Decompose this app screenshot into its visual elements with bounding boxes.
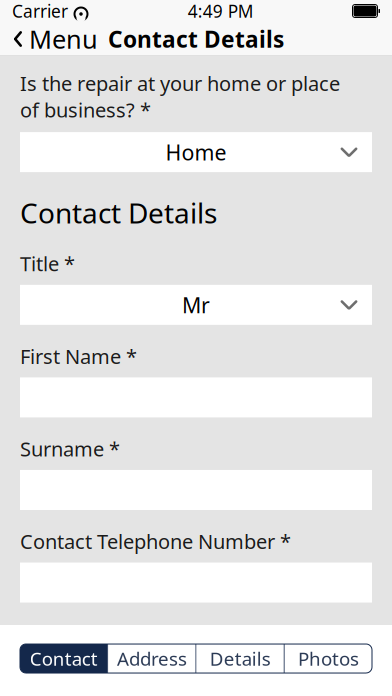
button[interactable]: Text field bbox=[20, 655, 372, 695]
staticText: Contact Telephone Number * bbox=[20, 528, 291, 555]
button[interactable]: Mr bbox=[20, 285, 372, 325]
staticText: Photos bbox=[298, 646, 359, 671]
staticText: First Name * bbox=[20, 343, 137, 369]
button[interactable]: Home bbox=[20, 132, 372, 172]
staticText: Email Address * bbox=[20, 620, 168, 647]
staticText: 4:49 PM bbox=[188, 0, 254, 22]
staticText: Address bbox=[117, 646, 187, 671]
staticText: Is the repair at your home or place of b… bbox=[20, 70, 340, 123]
staticText: Carrier bbox=[12, 0, 68, 22]
button[interactable]: Menu bbox=[0, 16, 98, 62]
button[interactable]: Details bbox=[196, 644, 284, 673]
button[interactable]: Address bbox=[108, 644, 195, 673]
staticText: Home bbox=[165, 138, 226, 166]
button[interactable]: Contact bbox=[20, 644, 107, 673]
staticText: Contact bbox=[30, 646, 98, 671]
staticText: Menu bbox=[29, 22, 98, 56]
staticText: Contact Details bbox=[108, 24, 284, 54]
staticText: Contact Details bbox=[20, 194, 217, 231]
staticText: Details bbox=[210, 646, 271, 671]
staticText: Mr bbox=[182, 291, 210, 319]
staticText: Surname * bbox=[20, 435, 120, 462]
button[interactable]: Photos bbox=[285, 644, 372, 673]
staticText: Title * bbox=[20, 250, 75, 277]
